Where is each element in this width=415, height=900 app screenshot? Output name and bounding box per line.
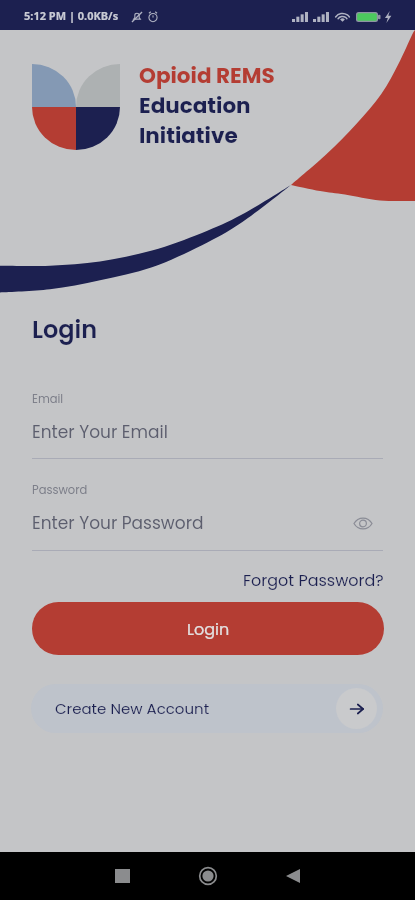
staticText: Enter Your Email xyxy=(32,420,168,444)
button[interactable]: Show password xyxy=(347,508,378,539)
staticText: Login xyxy=(187,618,230,640)
staticText: Password xyxy=(32,482,88,498)
button[interactable]: Back xyxy=(269,852,317,900)
staticText: Email xyxy=(32,391,64,407)
staticText: 5:12 PM | 0.0KB/s xyxy=(24,8,119,23)
staticText: Forgot Password? xyxy=(243,569,384,591)
button[interactable]: Login xyxy=(32,602,384,655)
button[interactable]: Forgot Password? xyxy=(223,567,384,593)
button[interactable]: Home xyxy=(184,852,232,900)
button[interactable]: Create New Account xyxy=(31,684,383,733)
staticText: Education xyxy=(139,90,251,120)
staticText: Login xyxy=(32,313,98,347)
staticText: Enter Your Password xyxy=(32,511,204,535)
staticText: Create New Account xyxy=(55,698,210,719)
button[interactable]: Recent apps xyxy=(98,852,146,900)
staticText: Opioid REMS xyxy=(139,60,275,90)
staticText: Initiative xyxy=(139,120,238,150)
